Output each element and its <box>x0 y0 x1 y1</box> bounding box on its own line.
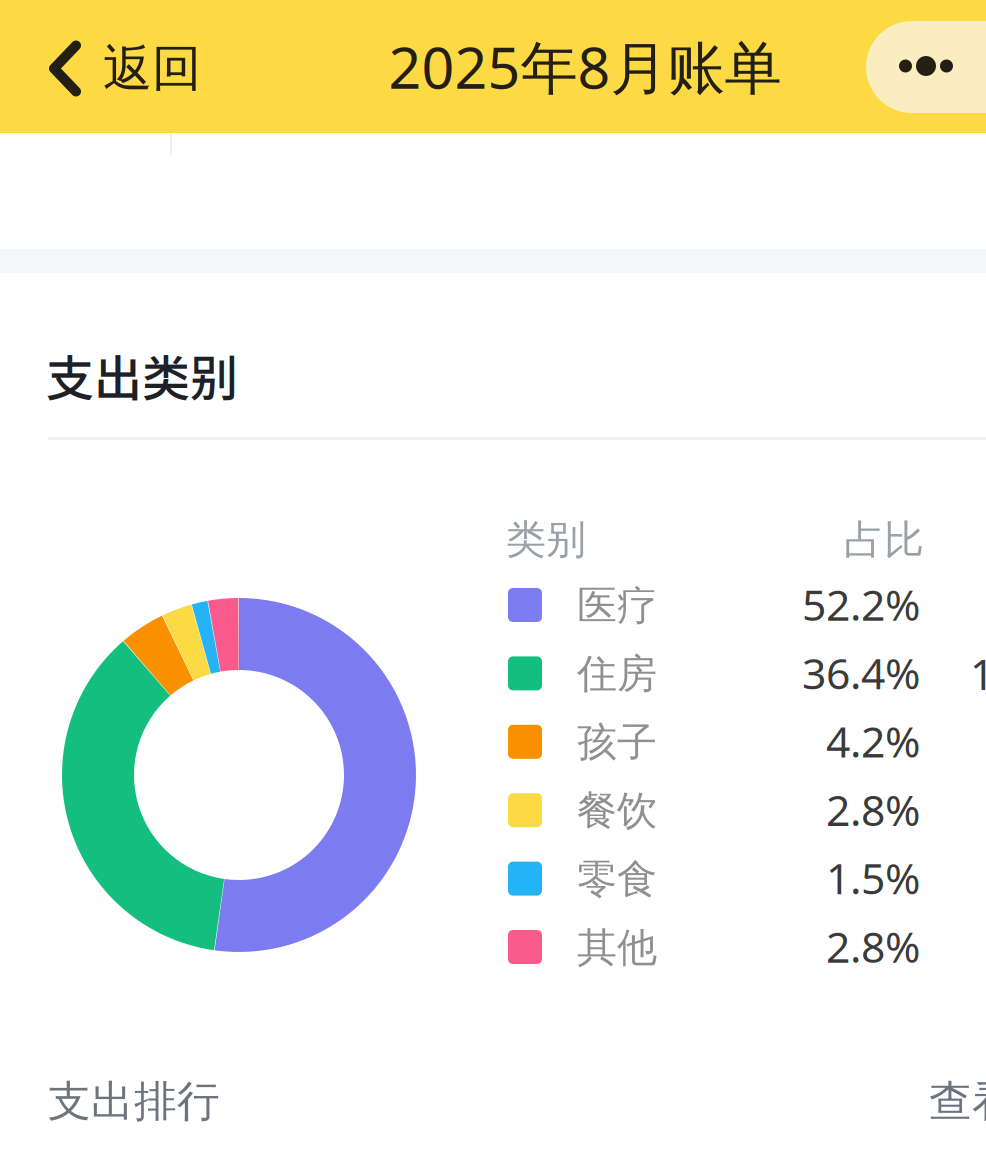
staticText: 支出类别 <box>46 340 238 409</box>
staticText: 其他 <box>577 923 657 972</box>
staticText: 36.4% <box>802 644 920 701</box>
staticText: 住房 <box>577 649 657 698</box>
staticText: 4.2% <box>826 713 920 769</box>
staticText: 返回 <box>103 38 201 99</box>
staticText: 2.8% <box>826 781 920 838</box>
staticText: 医疗 <box>577 581 657 630</box>
button[interactable]: More options <box>866 21 986 113</box>
staticText: 2025年8月账单 <box>388 28 781 104</box>
staticText: 支出排行 <box>48 1075 220 1128</box>
staticText: 类别 <box>506 515 586 564</box>
staticText: 孩子 <box>577 718 657 767</box>
staticText: 2.8% <box>826 918 920 975</box>
staticText: 占比 <box>844 515 924 564</box>
staticText: 52.2% <box>802 576 920 633</box>
staticText: 1.5% <box>826 849 920 906</box>
button[interactable]: 支出排行 <box>0 1045 986 1152</box>
button[interactable]: 返回 <box>0 0 231 137</box>
staticText: 零食 <box>577 855 657 904</box>
staticText: 查看 <box>929 1075 986 1128</box>
staticText: 1 <box>970 645 986 702</box>
staticText: 餐饮 <box>577 786 657 835</box>
